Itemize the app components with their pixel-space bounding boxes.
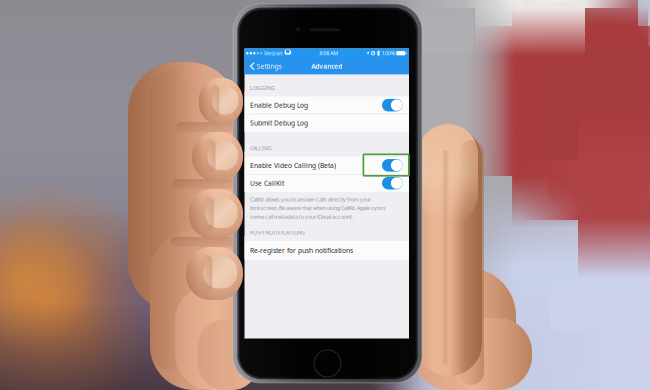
staticText: Submit Debug Log [250, 118, 308, 127]
staticText: Use CallKit [250, 179, 284, 188]
button[interactable]: Use CallKit [244, 174, 409, 192]
staticText: some call metadata to your iCloud accoun… [250, 213, 353, 220]
staticText: 8:08 AM [319, 50, 338, 57]
staticText: LOGGING [250, 84, 275, 91]
staticText: Enable Video Calling (Beta) [250, 161, 336, 170]
staticText: PUSH NOTIFICATIONS [250, 229, 305, 236]
button[interactable]: Submit Debug Log [244, 114, 409, 132]
staticText: 100% [382, 50, 395, 57]
staticText: Advanced [311, 62, 342, 71]
button[interactable]: Enable Video Calling (Beta) [244, 157, 409, 174]
button[interactable]: Re-register for push notifications [244, 241, 409, 260]
staticText: Re-register for push notifications [250, 246, 353, 255]
staticText: lockscreen. Be aware that when using Cal… [250, 204, 386, 212]
button[interactable]: Settings [244, 58, 287, 74]
staticText: Enable Debug Log [250, 101, 308, 110]
staticText: Verizon [264, 50, 282, 57]
staticText: Settings [257, 62, 282, 71]
button[interactable]: Enable Debug Log [244, 96, 409, 114]
staticText: CALLING [250, 145, 272, 152]
staticText: CallKit allows you to answer calls direc… [250, 196, 371, 203]
